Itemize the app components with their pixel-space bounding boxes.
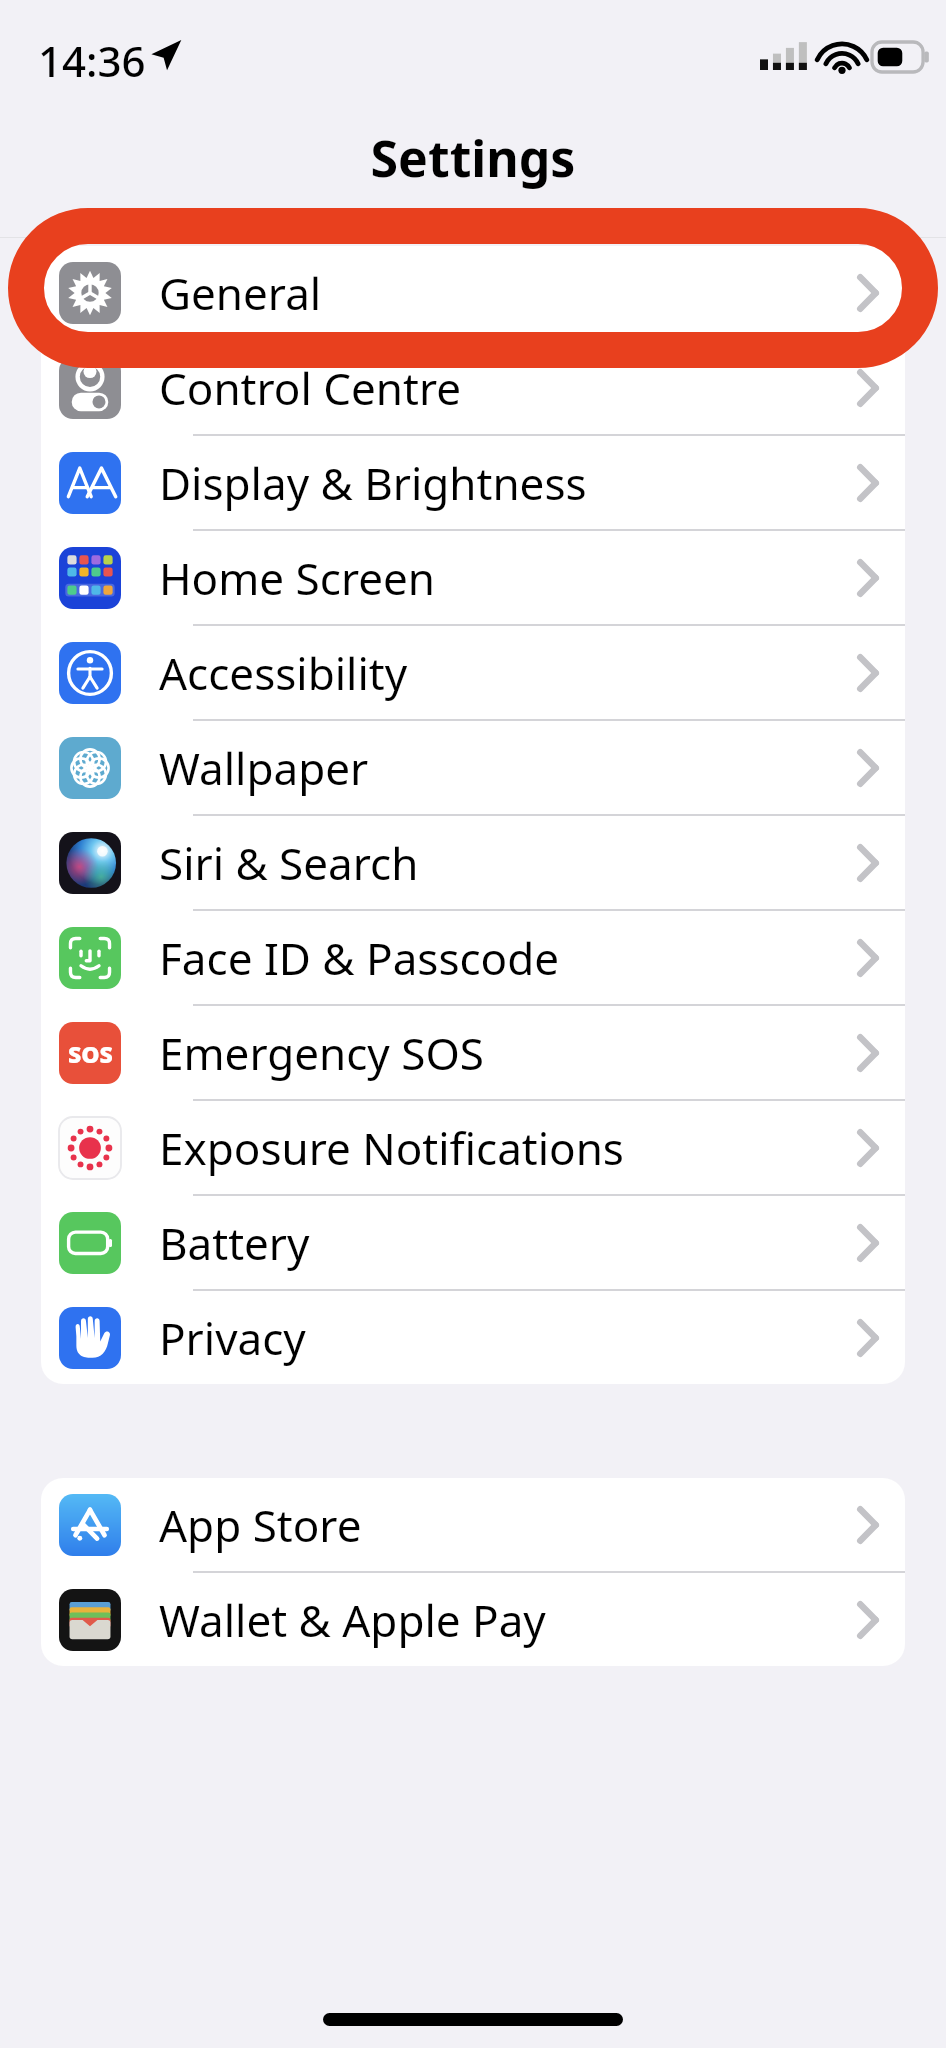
button[interactable]: Exposure Notifications <box>41 1101 905 1194</box>
staticText: Home Screen <box>159 548 436 608</box>
staticText: 14:36 <box>38 32 146 89</box>
button[interactable]: Control Centre <box>41 341 905 434</box>
button[interactable]: Wallet & Apple Pay <box>41 1573 905 1666</box>
staticText: Accessibility <box>159 643 408 703</box>
staticText: Battery <box>159 1213 310 1273</box>
button[interactable]: Accessibility <box>41 626 905 719</box>
button[interactable]: Display & Brightness <box>41 436 905 529</box>
button[interactable]: Battery <box>41 1196 905 1289</box>
staticText: Emergency SOS <box>159 1023 484 1083</box>
button[interactable]: Siri & Search <box>41 816 905 909</box>
button[interactable]: Home Screen <box>41 531 905 624</box>
staticText: General <box>159 263 322 323</box>
staticText: Display & Brightness <box>159 453 587 513</box>
button[interactable]: Privacy <box>41 1291 905 1384</box>
staticText: App Store <box>159 1495 362 1555</box>
button[interactable]: App Store <box>41 1478 905 1571</box>
button[interactable]: General <box>41 246 905 339</box>
staticText: Wallpaper <box>159 738 369 798</box>
staticText: Face ID & Passcode <box>159 928 560 988</box>
staticText: SOS <box>68 1038 113 1069</box>
staticText: Siri & Search <box>159 833 419 893</box>
staticText: Settings <box>0 124 946 192</box>
staticText: Exposure Notifications <box>159 1118 624 1178</box>
button[interactable]: Wallpaper <box>41 721 905 814</box>
staticText: Wallet & Apple Pay <box>159 1590 546 1650</box>
staticText: Control Centre <box>159 358 462 418</box>
button[interactable]: Face ID & Passcode <box>41 911 905 1004</box>
staticText: Privacy <box>159 1308 306 1368</box>
button[interactable]: SOS <box>41 1006 905 1099</box>
